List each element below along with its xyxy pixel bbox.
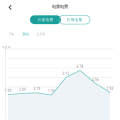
staticText: 上个月: [36, 32, 45, 36]
staticText: 1.92: [106, 86, 113, 90]
staticText: 1.97: [48, 89, 55, 93]
staticText: 2.09: [19, 87, 26, 91]
staticText: 30天: [22, 32, 29, 36]
staticText: 3.12: [62, 71, 69, 75]
staticText: 2.19: [33, 87, 40, 91]
button[interactable]: 7天: [5, 31, 18, 37]
staticText: 2.56: [92, 77, 99, 81]
staticText: 3.78: [76, 64, 83, 68]
staticText: 1.99: [4, 89, 11, 93]
staticText: 7天: [9, 32, 14, 36]
staticText: 电量电费: [52, 4, 68, 9]
button[interactable]: 月度电费: [30, 15, 61, 24]
button[interactable]: 上个月: [33, 31, 48, 37]
button[interactable]: Back: [5, 1, 15, 14]
staticText: 月度电费: [37, 17, 53, 22]
button[interactable]: 日用电量: [59, 15, 90, 24]
staticText: 千瓦时: [2, 45, 11, 49]
button[interactable]: 30天: [18, 31, 33, 37]
staticText: 日用电量: [66, 17, 82, 22]
